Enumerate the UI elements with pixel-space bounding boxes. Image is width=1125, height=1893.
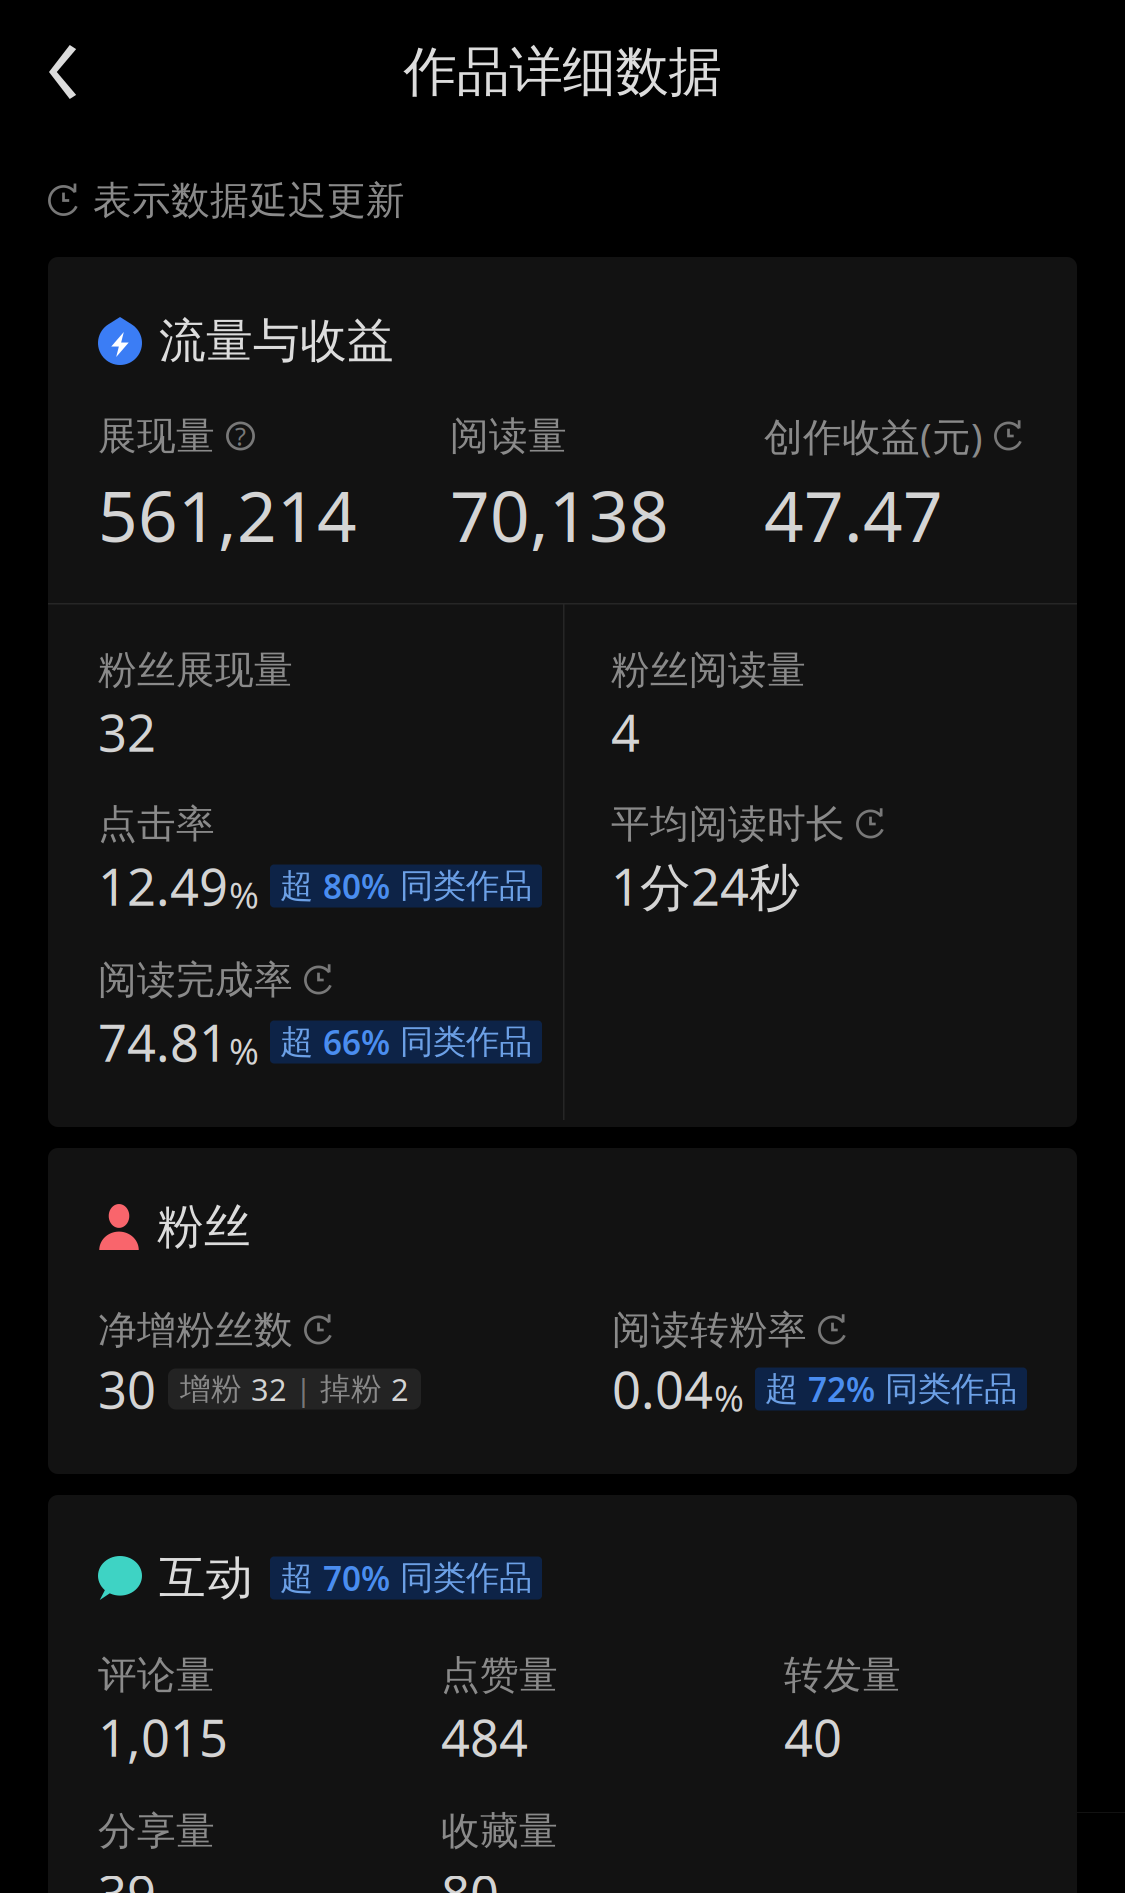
staticText: % — [714, 1374, 744, 1422]
staticText: 点赞量 — [441, 1651, 558, 1699]
staticText: ? — [235, 419, 246, 453]
staticText: 30 — [98, 1355, 156, 1423]
staticText: 超 — [280, 1557, 323, 1598]
staticText: 超 — [280, 1021, 323, 1062]
staticText: 484 — [441, 1703, 528, 1771]
staticText: 创作收益(元) — [764, 410, 983, 462]
staticText: 掉粉 — [320, 1370, 391, 1408]
staticText: 同类作品 — [390, 1021, 532, 1062]
staticText: 流量与收益 — [159, 312, 394, 370]
staticText: 同类作品 — [390, 865, 532, 906]
staticText: % — [229, 871, 259, 919]
staticText: 粉丝 — [157, 1198, 251, 1256]
staticText: 4 — [611, 698, 640, 766]
staticText: 阅读完成率 — [98, 956, 293, 1004]
staticText: 超 — [280, 865, 323, 906]
staticText: 转发量 — [784, 1651, 901, 1699]
staticText: 同类作品 — [390, 1557, 532, 1598]
staticText: 80 — [441, 1859, 499, 1893]
staticText: 1,015 — [98, 1703, 228, 1771]
staticText: 72% — [808, 1367, 875, 1411]
staticText: 70% — [323, 1556, 390, 1600]
staticText: 粉丝阅读量 — [611, 646, 806, 694]
staticText: 粉丝展现量 — [98, 646, 293, 694]
staticText: % — [229, 1027, 259, 1075]
staticText: 40 — [784, 1703, 842, 1771]
button[interactable]: 返回 — [0, 13, 112, 131]
staticText: 净增粉丝数 — [98, 1306, 293, 1354]
staticText: | — [287, 1369, 320, 1409]
staticText: 超 — [765, 1368, 808, 1409]
staticText: 展现量 — [98, 412, 215, 460]
staticText: 12.49 — [98, 852, 228, 920]
staticText: 阅读量 — [450, 412, 567, 460]
staticText: 2 — [391, 1369, 409, 1409]
staticText: 66% — [323, 1020, 390, 1064]
staticText: 同类作品 — [875, 1368, 1017, 1409]
staticText: 增粉 — [180, 1370, 251, 1408]
staticText: 评论量 — [98, 1651, 215, 1699]
staticText: 80% — [323, 864, 390, 908]
staticText: 32 — [98, 698, 156, 766]
staticText: 分享量 — [98, 1807, 215, 1855]
staticText: 互动 — [159, 1549, 253, 1607]
staticText: 1分24秒 — [611, 852, 800, 920]
staticText: 39 — [98, 1859, 156, 1893]
staticText: 平均阅读时长 — [611, 800, 845, 848]
staticText: 74.81 — [98, 1008, 228, 1076]
staticText: 561,214 — [98, 469, 357, 561]
staticText: 作品详细数据 — [403, 39, 721, 105]
staticText: 表示数据延迟更新 — [93, 177, 405, 224]
staticText: 32 — [251, 1369, 287, 1409]
staticText: 47.47 — [764, 469, 943, 561]
staticText: 70,138 — [450, 469, 669, 561]
staticText: 收藏量 — [441, 1807, 558, 1855]
staticText: 点击率 — [98, 800, 215, 848]
staticText: 0.04 — [612, 1355, 713, 1423]
staticText: 阅读转粉率 — [612, 1306, 807, 1354]
